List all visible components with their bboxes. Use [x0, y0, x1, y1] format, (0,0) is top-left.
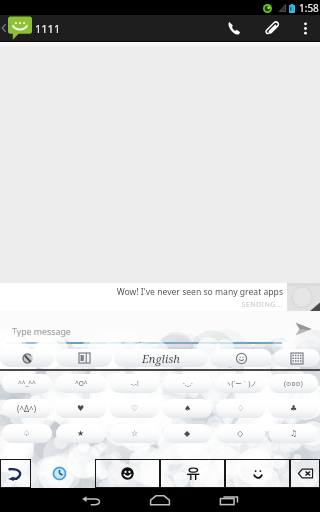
button[interactable]: Kaomoji — [160, 459, 225, 488]
staticText: ☆ — [131, 429, 139, 438]
button[interactable]: English — [114, 349, 208, 367]
staticText: ヽ(´ー｀)ノ — [225, 379, 257, 388]
button[interactable]: Faces — [225, 459, 290, 488]
staticText: (^Δ^) — [17, 403, 37, 414]
staticText: -.-! — [131, 379, 139, 388]
button[interactable]: ヽ(´ー｀)ノ — [216, 374, 265, 393]
staticText: ^O^ — [75, 379, 88, 388]
button[interactable]: ◇ — [216, 424, 265, 443]
button[interactable]: (^Δ^) — [2, 399, 52, 418]
button[interactable]: (⊙o⊙) — [269, 374, 318, 393]
button[interactable]: Attach — [254, 15, 290, 41]
staticText: ♥ — [77, 404, 85, 413]
button[interactable]: ♥ — [56, 399, 106, 418]
button[interactable]: ★ — [56, 424, 106, 443]
button[interactable]: ♤ — [2, 424, 52, 443]
button[interactable]: Emoji — [210, 349, 272, 367]
button[interactable]: Wow! I've never seen so many great apps — [8, 286, 283, 311]
staticText: ♡ — [131, 404, 139, 413]
button[interactable]: ◆ — [163, 424, 212, 443]
button[interactable]: More options — [290, 15, 320, 41]
button[interactable]: ♢ — [216, 399, 265, 418]
staticText: 1:58 — [299, 1, 319, 15]
button[interactable]: Recent apps — [206, 488, 252, 512]
staticText: ♫ — [290, 429, 298, 438]
button[interactable]: Clipboard — [56, 349, 112, 367]
staticText: ★ — [77, 429, 85, 438]
button[interactable]: ♡ — [110, 399, 159, 418]
button[interactable]: -.-! — [110, 374, 159, 393]
button[interactable]: Return — [0, 459, 31, 488]
staticText: Type message — [12, 326, 71, 338]
staticText: ♢ — [237, 404, 245, 413]
button[interactable]: Navigate up — [0, 15, 32, 41]
staticText: ♠ — [184, 404, 192, 413]
staticText: ♤ — [23, 429, 31, 438]
button[interactable]: ^^_^^ — [2, 374, 52, 393]
button[interactable]: Voice input — [0, 349, 54, 367]
staticText: ◆ — [184, 429, 191, 438]
staticText: 1111 — [35, 21, 61, 36]
staticText: (⊙o⊙) — [284, 379, 303, 388]
staticText: English — [142, 351, 180, 366]
button[interactable]: ☆ — [110, 424, 159, 443]
staticText: SENDING... — [8, 300, 283, 310]
button[interactable]: Send — [286, 311, 320, 347]
staticText: Wow! I've never seen so many great apps — [8, 286, 283, 298]
button[interactable]: ♫ — [269, 424, 318, 443]
button[interactable]: Smileys — [95, 459, 160, 488]
staticText: ·._.· — [183, 379, 193, 388]
button[interactable]: Keyboard settings — [274, 349, 320, 367]
button[interactable]: Call — [214, 15, 254, 41]
button[interactable]: ♣ — [269, 399, 318, 418]
button[interactable]: Delete — [290, 459, 320, 488]
button[interactable]: Home — [137, 488, 183, 512]
staticText: ♣ — [290, 404, 298, 413]
button[interactable]: Back — [68, 488, 114, 512]
button[interactable]: ^O^ — [56, 374, 106, 393]
button[interactable]: ♠ — [163, 399, 212, 418]
button[interactable]: ·._.· — [163, 374, 212, 393]
staticText: ◇ — [237, 429, 244, 438]
staticText: ^^_^^ — [18, 379, 36, 388]
staticText: 유 — [186, 465, 200, 483]
button[interactable]: Recent emoticons — [31, 459, 88, 488]
